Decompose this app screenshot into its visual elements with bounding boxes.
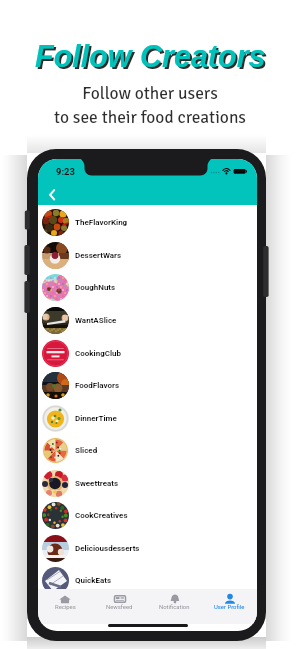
staticText: FoodFlavors <box>75 381 120 390</box>
button[interactable]: FoodFlavors <box>38 369 257 401</box>
staticText: DinnerTime <box>75 414 117 423</box>
staticText: Notification <box>159 604 190 611</box>
button[interactable]: DinnerTime <box>38 402 257 434</box>
button[interactable]: QuickEats <box>38 564 257 596</box>
staticText: User Profile <box>214 604 245 611</box>
staticText: Deliciousdesserts <box>75 544 140 553</box>
button[interactable]: Sweettreats <box>38 467 257 499</box>
staticText: CookingClub <box>75 349 122 358</box>
staticText: Sliced <box>75 446 98 455</box>
staticText: Recipes <box>55 604 76 611</box>
button[interactable]: Recipes <box>38 589 92 624</box>
button[interactable]: Newsfeed <box>92 589 147 624</box>
staticText: Follow Creators <box>35 39 266 73</box>
staticText: TheFlavorKing <box>75 218 128 227</box>
button[interactable]: Deliciousdesserts <box>38 532 257 564</box>
staticText: 9:23 <box>56 166 75 177</box>
staticText: DessertWars <box>75 251 122 260</box>
button[interactable]: WantASlice <box>38 304 257 336</box>
staticText: Sweettreats <box>75 479 119 488</box>
staticText: Newsfeed <box>106 604 133 611</box>
button[interactable]: Notification <box>147 589 202 624</box>
staticText: WantASlice <box>75 316 117 325</box>
button[interactable]: TheFlavorKing <box>38 206 257 238</box>
staticText: QuickEats <box>75 576 112 585</box>
button[interactable]: CookingClub <box>38 337 257 369</box>
button[interactable]: Back <box>41 181 63 206</box>
button[interactable]: User Profile <box>202 589 257 624</box>
staticText: CookCreatives <box>75 511 128 520</box>
staticText: Follow Creators <box>37 41 268 75</box>
button[interactable]: CookCreatives <box>38 499 257 531</box>
button[interactable]: Sliced <box>38 434 257 466</box>
button[interactable]: DoughNuts <box>38 271 257 303</box>
staticText: DoughNuts <box>75 283 116 292</box>
button[interactable]: DessertWars <box>38 239 257 271</box>
staticText: Follow other users to see their food cre… <box>54 83 246 128</box>
